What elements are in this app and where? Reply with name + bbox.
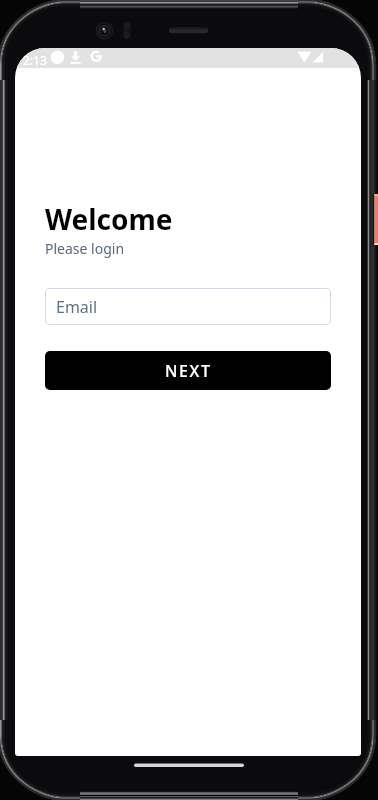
staticText: 2:13 bbox=[23, 52, 47, 68]
staticText: Welcome bbox=[45, 200, 173, 238]
staticText: NEXT bbox=[165, 360, 212, 382]
button[interactable]: Email bbox=[45, 288, 331, 325]
staticText: Please login bbox=[45, 239, 125, 258]
staticText: Email bbox=[56, 296, 98, 318]
button[interactable]: NEXT bbox=[45, 351, 331, 390]
